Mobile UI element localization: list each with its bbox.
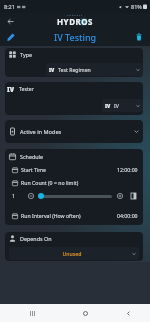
button[interactable]: Increase [115, 191, 124, 200]
staticText: 04:00:00 [117, 212, 138, 219]
button[interactable]: Run Count (0 = no limit) [5, 176, 143, 189]
staticText: 1 [12, 192, 15, 199]
button[interactable]: Decrease [26, 191, 35, 200]
staticText: Run Interval (How often) [21, 212, 81, 219]
button[interactable]: Active in Modes [5, 120, 143, 143]
staticText: Start Time [21, 166, 46, 173]
staticText: Active in Modes [20, 128, 62, 136]
button[interactable]: IV [102, 99, 143, 112]
staticText: 12:00:00 [117, 166, 138, 173]
staticText: 81% [131, 3, 142, 10]
staticText: Depends On [20, 235, 52, 242]
staticText: IV [49, 67, 55, 73]
staticText: Type [20, 51, 32, 58]
staticText: IV [7, 85, 15, 93]
staticText: Run Count (0 = no limit) [21, 179, 79, 186]
staticText: HYDROS [57, 16, 93, 27]
button[interactable]: Keyboard input [129, 191, 138, 200]
button[interactable]: Recents [0, 304, 64, 322]
button[interactable]: Delete [131, 29, 147, 45]
staticText: Unused [12, 250, 132, 257]
button[interactable]: Home [64, 304, 106, 322]
button[interactable]: IV [46, 63, 143, 76]
staticText: IV [105, 103, 111, 109]
button[interactable]: Start Time [5, 163, 143, 176]
button[interactable]: Back [106, 304, 150, 322]
staticText: 8:21 [4, 3, 15, 10]
staticText: IV [114, 102, 119, 109]
staticText: Tester [19, 85, 34, 92]
button[interactable]: Unused [9, 247, 139, 260]
staticText: Schedule [20, 153, 43, 160]
staticText: IV Testing [54, 31, 97, 43]
button[interactable]: Run Interval (How often) [5, 209, 143, 222]
staticText: C O R E E S S [67, 14, 83, 17]
button[interactable]: Edit [3, 29, 19, 45]
button[interactable]: Back [3, 14, 17, 28]
staticText: Test Regimen [58, 66, 91, 73]
